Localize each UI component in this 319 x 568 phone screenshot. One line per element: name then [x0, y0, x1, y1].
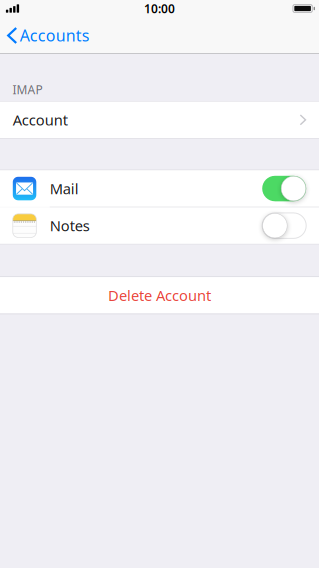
button[interactable]: Account	[0, 102, 319, 138]
staticText: Delete Account	[108, 286, 211, 305]
staticText: Accounts	[20, 25, 90, 46]
staticText: Account	[13, 110, 68, 130]
button[interactable]: Delete Account	[0, 277, 319, 314]
staticText: 10:00	[144, 0, 175, 16]
staticText: Notes	[50, 216, 90, 235]
button[interactable]: Notes	[262, 213, 306, 238]
button[interactable]: Mail	[262, 176, 306, 201]
staticText: IMAP	[13, 82, 43, 97]
button[interactable]: Accounts	[0, 17, 110, 54]
staticText: Mail	[50, 179, 79, 198]
